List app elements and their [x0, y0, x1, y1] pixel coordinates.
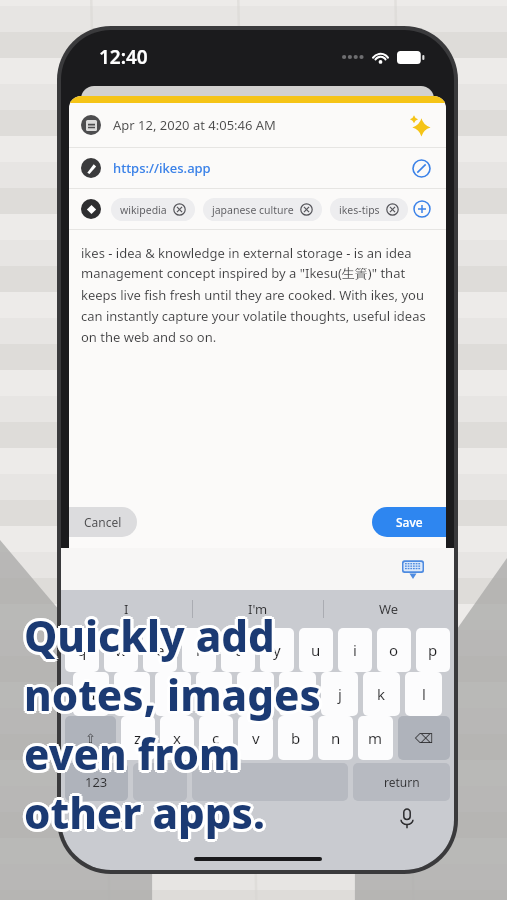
button[interactable]: m [358, 716, 393, 760]
staticText: notes, images [24, 669, 321, 726]
staticText: even from [24, 728, 241, 785]
button[interactable]: Open link [408, 155, 434, 181]
staticText: ⇧ [85, 731, 96, 746]
button[interactable]: c [199, 716, 233, 760]
staticText: even from [22, 723, 239, 780]
staticText: p [428, 640, 438, 660]
button[interactable]: y [260, 628, 294, 672]
staticText: other apps. [21, 784, 262, 841]
button[interactable]: g [237, 672, 274, 716]
staticText: I [124, 600, 129, 618]
staticText: q [77, 640, 87, 660]
staticText: even from [21, 725, 238, 782]
staticText: Quickly add [26, 609, 277, 666]
staticText: c [212, 728, 220, 748]
staticText: Cancel [84, 514, 122, 530]
staticText: even from [22, 727, 239, 784]
button[interactable]: r [182, 628, 216, 672]
staticText: b [291, 728, 301, 748]
staticText: other apps. [27, 784, 268, 841]
staticText: even from [24, 725, 241, 782]
button[interactable]: w [104, 628, 138, 672]
staticText: Quickly add [22, 605, 273, 662]
button[interactable]: japanese culture [203, 198, 322, 221]
staticText: We [379, 600, 399, 618]
staticText: n [331, 728, 341, 748]
staticText: other apps. [26, 782, 267, 839]
button[interactable]: return [353, 763, 450, 801]
staticText: even from [26, 723, 243, 780]
staticText: i [353, 640, 357, 660]
staticText: notes, images [22, 668, 319, 725]
staticText: Quickly add [22, 609, 273, 666]
button[interactable]: d [155, 672, 191, 716]
button[interactable]: n [318, 716, 353, 760]
staticText: w [115, 640, 127, 660]
button[interactable]: o [377, 628, 411, 672]
staticText: notes, images [24, 663, 321, 720]
staticText: o [389, 640, 399, 660]
button[interactable]: https://ikes.app [69, 148, 446, 188]
button[interactable]: f [196, 672, 232, 716]
button[interactable]: e [143, 628, 177, 672]
staticText: even from [27, 725, 244, 782]
button[interactable]: Add tag [410, 197, 434, 221]
button[interactable]: s [114, 672, 150, 716]
staticText: notes, images [26, 668, 323, 725]
button[interactable]: Magic [406, 111, 434, 139]
staticText: I'm [248, 600, 268, 618]
staticText: even from [24, 722, 241, 779]
button[interactable]: l [405, 672, 442, 716]
staticText: Quickly add [21, 607, 272, 664]
staticText: d [168, 684, 178, 704]
staticText: t [235, 640, 241, 660]
button[interactable]: t [221, 628, 255, 672]
staticText: even from [26, 727, 243, 784]
staticText: Quickly add [24, 604, 275, 661]
button[interactable]: Space [192, 763, 348, 801]
staticText: s [128, 684, 136, 704]
staticText: other apps. [26, 786, 267, 843]
button[interactable]: Save [372, 507, 446, 537]
staticText: other apps. [22, 782, 263, 839]
button[interactable]: u [299, 628, 333, 672]
staticText: Apr 12, 2020 at 4:05:46 AM [113, 116, 276, 134]
staticText: l [422, 684, 426, 704]
button[interactable]: Cancel [69, 507, 137, 537]
button[interactable]: v [238, 716, 273, 760]
staticText: Quickly add [24, 607, 275, 664]
staticText: other apps. [24, 784, 265, 841]
staticText: other apps. [24, 787, 265, 844]
button[interactable]: a [73, 672, 109, 716]
staticText: 123 [85, 773, 108, 791]
staticText: m [368, 728, 383, 748]
button[interactable]: Dictation [394, 806, 420, 832]
button[interactable]: x [160, 716, 194, 760]
staticText: ikes - idea & knowledge in external stor… [81, 244, 432, 346]
button[interactable]: j [321, 672, 358, 716]
button[interactable]: k [363, 672, 400, 716]
button[interactable]: ⌫ [398, 716, 450, 760]
button[interactable]: q [65, 628, 99, 672]
button[interactable]: i [338, 628, 372, 672]
staticText: 12:40 [99, 44, 148, 70]
button[interactable]: Emoji [133, 763, 187, 801]
button[interactable]: Hide keyboard [398, 554, 428, 584]
button[interactable]: Apr 12, 2020 at 4:05:46 AM [69, 103, 446, 147]
staticText: ikes-tips [339, 203, 380, 217]
button[interactable]: z [121, 716, 155, 760]
staticText: k [377, 684, 386, 704]
button[interactable]: ⇧ [65, 716, 116, 760]
button[interactable]: wikipedia [111, 198, 195, 221]
staticText: notes, images [24, 666, 321, 723]
staticText: notes, images [27, 666, 324, 723]
button[interactable]: p [416, 628, 450, 672]
staticText: Save [396, 514, 423, 530]
staticText: z [134, 728, 142, 748]
button[interactable]: 123 [65, 763, 128, 801]
button[interactable]: b [278, 716, 313, 760]
button[interactable]: h [279, 672, 316, 716]
button[interactable]: ikes-tips [330, 198, 408, 221]
staticText: x [173, 728, 181, 748]
staticText: y [273, 640, 281, 660]
